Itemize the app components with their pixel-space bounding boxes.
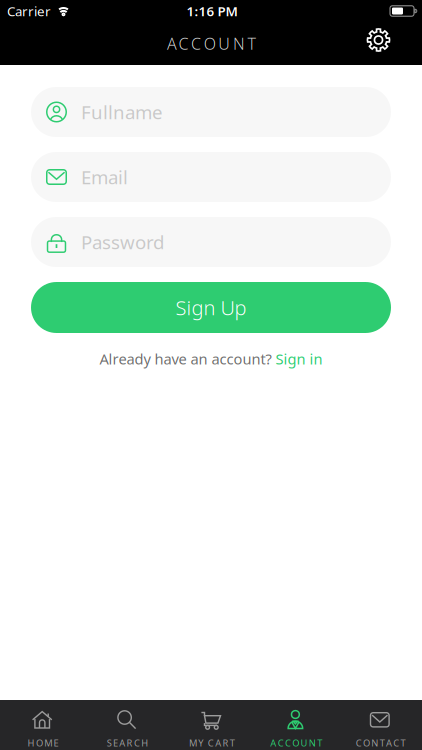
staticText: MY CART bbox=[189, 737, 238, 749]
button[interactable]: Sign in bbox=[275, 349, 322, 368]
staticText: Sign Up bbox=[175, 294, 246, 321]
staticText: Already have an account? bbox=[99, 349, 271, 368]
button[interactable]: MY CART bbox=[169, 700, 253, 750]
staticText: Fullname bbox=[81, 100, 163, 124]
staticText: ACCOUNT bbox=[167, 33, 262, 54]
staticText: SEARCH bbox=[107, 737, 151, 749]
button[interactable]: ACCOUNT bbox=[253, 700, 338, 750]
button[interactable]: SEARCH bbox=[84, 700, 169, 750]
button[interactable]: HOME bbox=[0, 700, 84, 750]
staticText: Email bbox=[81, 165, 128, 189]
staticText: CONTACT bbox=[356, 737, 409, 749]
button[interactable]: Settings bbox=[357, 22, 400, 65]
staticText: HOME bbox=[28, 737, 62, 749]
button[interactable]: Sign Up bbox=[31, 282, 391, 333]
staticText: Sign in bbox=[275, 349, 322, 368]
staticText: 1:16 PM bbox=[186, 2, 237, 20]
staticText: Password bbox=[81, 230, 164, 254]
staticText: Carrier bbox=[7, 2, 51, 20]
button[interactable]: CONTACT bbox=[338, 700, 422, 750]
staticText: ACCOUNT bbox=[270, 737, 325, 749]
